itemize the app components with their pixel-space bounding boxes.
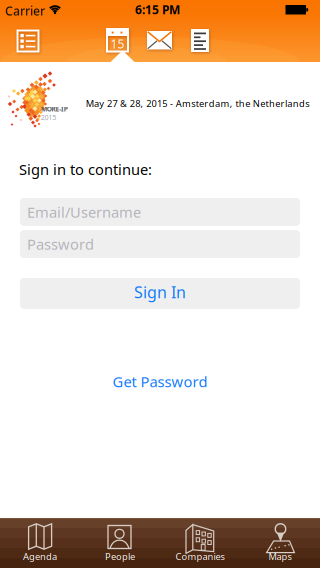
- staticText: MORE-IP: [41, 104, 68, 113]
- button[interactable]: Agenda: [0, 518, 80, 568]
- staticText: Maps: [268, 550, 291, 563]
- staticText: Companies: [175, 550, 224, 563]
- staticText: Agenda: [23, 550, 57, 563]
- button[interactable]: Get Password: [112, 372, 207, 391]
- staticText: Sign in to continue:: [19, 159, 152, 179]
- staticText: 6:15 PM: [135, 1, 180, 17]
- staticText: 15: [110, 36, 124, 52]
- staticText: Email/Username: [27, 202, 141, 222]
- staticText: Email/Username: [27, 202, 141, 222]
- button[interactable]: Calendar: [95, 20, 139, 62]
- button[interactable]: Companies: [160, 518, 240, 568]
- staticText: Password: [27, 234, 94, 254]
- staticText: People: [105, 550, 135, 563]
- staticText: Get Password: [112, 372, 207, 391]
- staticText: 2015: [41, 113, 56, 122]
- button[interactable]: Notes: [178, 20, 222, 62]
- button[interactable]: Maps: [240, 518, 320, 568]
- staticText: May 27 & 28, 2015 - Amsterdam, the Nethe…: [86, 97, 309, 110]
- button[interactable]: People: [80, 518, 160, 568]
- textField[interactable]: Email/Username: [27, 202, 300, 222]
- button[interactable]: Messages: [137, 20, 181, 62]
- button[interactable]: Program: [6, 20, 50, 62]
- staticText: Sign In: [134, 281, 186, 303]
- staticText: Password: [27, 234, 94, 254]
- staticText: Carrier: [5, 3, 45, 19]
- textField[interactable]: Password: [27, 234, 300, 254]
- button[interactable]: Sign In: [20, 278, 300, 309]
